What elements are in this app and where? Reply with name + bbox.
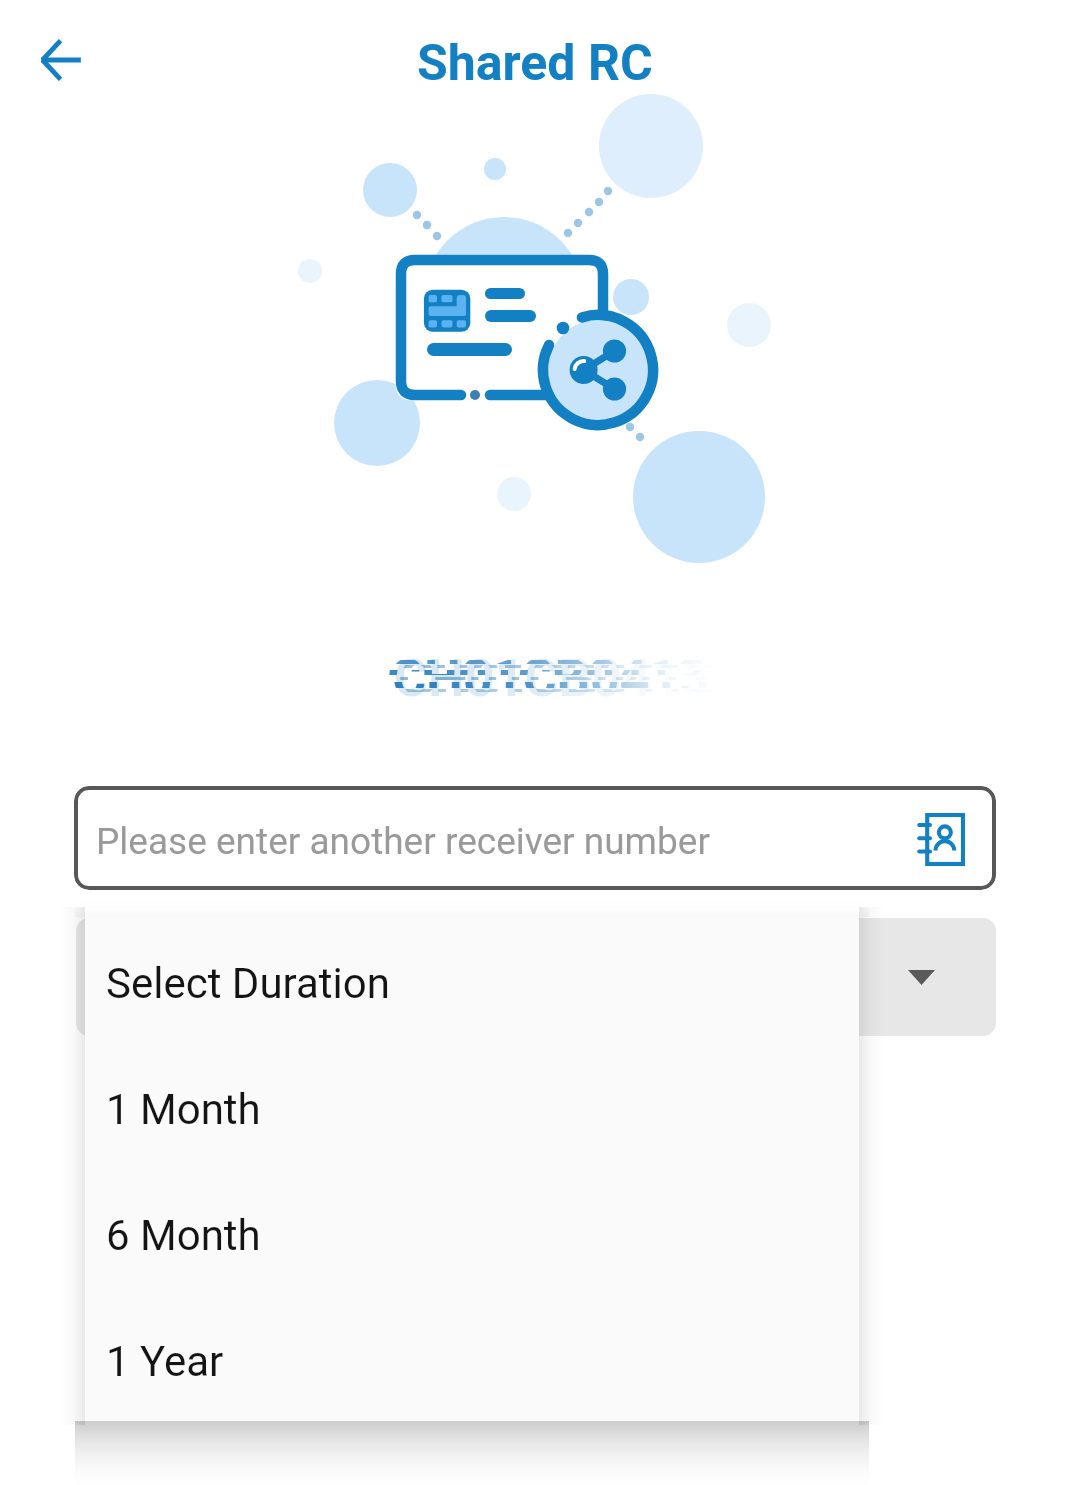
staticText: Please enter another receiver number bbox=[96, 820, 710, 863]
button[interactable]: Pick contact bbox=[917, 813, 965, 866]
staticText: 1 Month bbox=[106, 1085, 261, 1134]
staticText: Shared RC bbox=[417, 34, 653, 93]
staticText: 6 Month bbox=[106, 1211, 261, 1260]
button[interactable]: Select Duration bbox=[85, 917, 859, 1043]
staticText: 1 Year bbox=[106, 1337, 224, 1386]
staticText: Select Duration bbox=[106, 959, 390, 1008]
button[interactable]: 1 Year bbox=[85, 1295, 859, 1421]
button[interactable]: 6 Month bbox=[85, 1169, 859, 1295]
button[interactable] bbox=[76, 918, 996, 1036]
button[interactable]: Please enter another receiver number bbox=[74, 786, 996, 890]
button[interactable]: 1 Month bbox=[85, 1043, 859, 1169]
button[interactable]: Back bbox=[26, 29, 88, 91]
